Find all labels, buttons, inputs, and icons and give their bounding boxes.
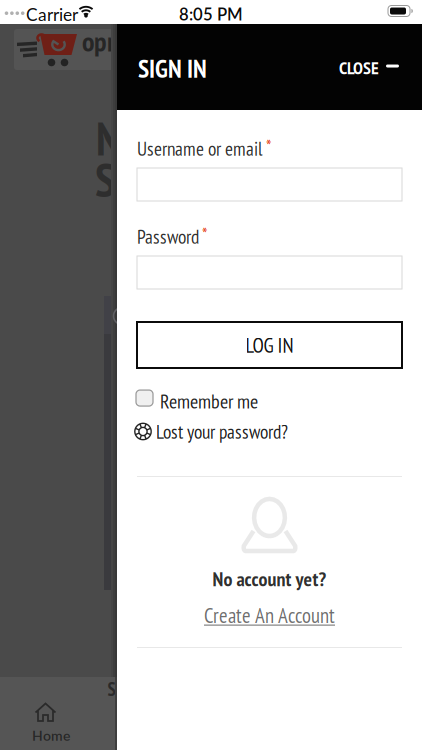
- staticText: 8:05 PM: [179, 4, 243, 24]
- staticText: Password: [137, 224, 199, 249]
- staticText: CLOSE: [339, 56, 379, 79]
- staticText: S: [95, 149, 115, 209]
- staticText: Carrier: [26, 4, 78, 25]
- staticText: Username or email: [137, 136, 263, 161]
- button[interactable]: Home: [23, 702, 69, 742]
- staticText: Home: [32, 727, 70, 744]
- staticText: oprote: [82, 23, 147, 59]
- staticText: S: [107, 677, 115, 701]
- button[interactable]: CLOSE: [329, 51, 403, 79]
- button[interactable]: Password: [137, 256, 402, 289]
- button[interactable]: Lost your password?: [134, 425, 284, 444]
- button[interactable]: LOG IN: [137, 322, 402, 368]
- staticText: *: [266, 134, 271, 159]
- staticText: No account yet?: [212, 566, 326, 592]
- staticText: *: [202, 222, 207, 247]
- button[interactable]: Username or email: [137, 168, 402, 201]
- staticText: Lost your password?: [156, 419, 288, 444]
- button[interactable]: Remember me: [136, 393, 261, 411]
- staticText: N: [96, 108, 121, 168]
- staticText: SIGN IN: [138, 52, 207, 85]
- staticText: Remember me: [160, 388, 258, 414]
- button[interactable]: Create An Account: [204, 602, 335, 629]
- staticText: LOG IN: [245, 332, 293, 358]
- staticText: Create An Account: [204, 602, 335, 629]
